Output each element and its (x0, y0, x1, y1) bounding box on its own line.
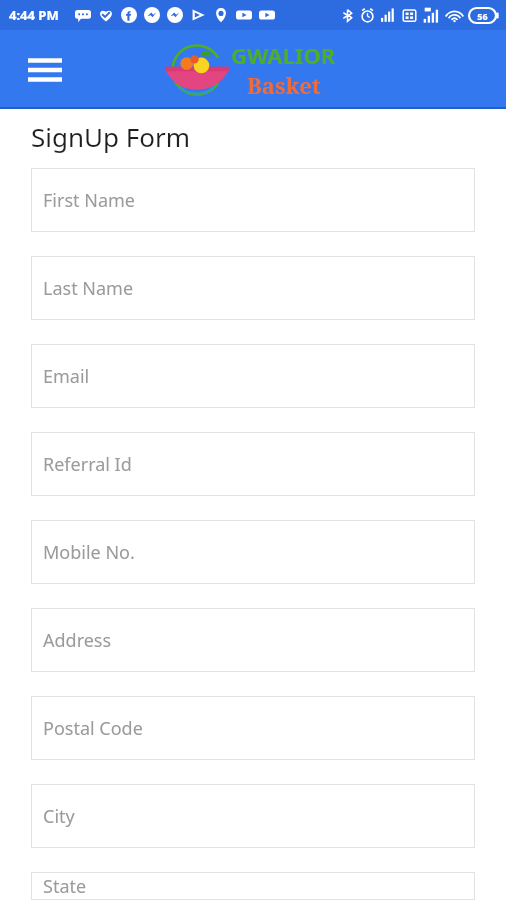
button[interactable]: Open navigation menu (22, 47, 68, 93)
button[interactable]: Last Name (31, 256, 475, 320)
staticText: Postal Code (43, 716, 143, 741)
staticText: Basket (247, 70, 321, 100)
staticText: Last Name (43, 276, 134, 301)
button[interactable]: Postal Code (31, 696, 475, 760)
staticText: 56 (477, 10, 488, 22)
staticText: GWALIOR (231, 40, 336, 70)
staticText: 4:44 PM (9, 6, 59, 24)
staticText: Mobile No. (43, 540, 135, 565)
staticText: SignUp Form (31, 119, 191, 154)
button[interactable]: Email (31, 344, 475, 408)
staticText: Email (43, 364, 90, 389)
staticText: Address (43, 628, 112, 653)
button[interactable]: Referral Id (31, 432, 475, 496)
staticText: Referral Id (43, 452, 132, 477)
button[interactable]: State (31, 872, 475, 900)
button[interactable]: Mobile No. (31, 520, 475, 584)
button[interactable]: City (31, 784, 475, 848)
button[interactable]: Address (31, 608, 475, 672)
staticText: First Name (43, 188, 135, 213)
staticText: State (43, 874, 87, 899)
button[interactable]: First Name (31, 168, 475, 232)
staticText: City (43, 804, 75, 829)
